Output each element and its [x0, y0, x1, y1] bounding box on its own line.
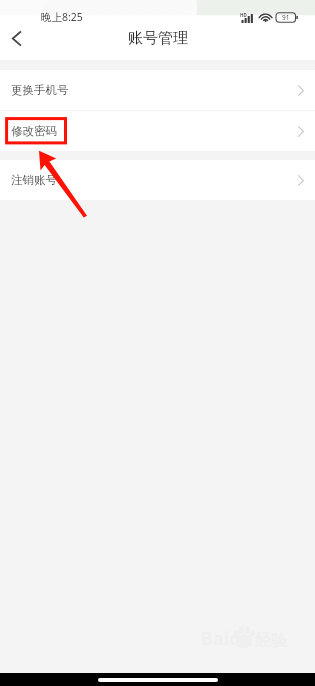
button[interactable]: 修改密码 [0, 111, 315, 151]
button[interactable]: 返回 [0, 26, 33, 51]
staticText: HD [240, 12, 247, 18]
staticText: 账号管理 [128, 29, 188, 48]
button[interactable]: 注销账号 [0, 160, 315, 200]
staticText: 注销账号 [11, 173, 57, 187]
staticText: 晚上8:25 [41, 10, 83, 24]
button[interactable]: 更换手机号 [0, 70, 315, 110]
staticText: 修改密码 [11, 124, 57, 138]
staticText: 91 [282, 13, 290, 22]
staticText: 更换手机号 [11, 83, 69, 97]
